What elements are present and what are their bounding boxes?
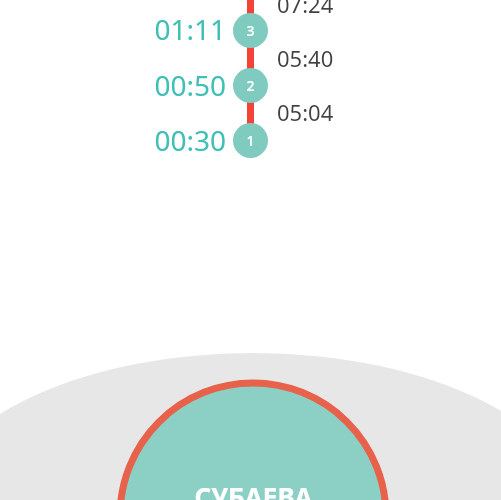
staticText: 01:11	[154, 10, 226, 46]
staticText: 05:40	[277, 43, 334, 73]
button[interactable]: 05:04	[277, 97, 367, 127]
button[interactable]: СУБАЕВА	[194, 479, 313, 500]
button[interactable]: 00:30	[116, 121, 226, 157]
button[interactable]: Lap 1	[233, 123, 268, 158]
staticText: 07:24	[277, 0, 334, 19]
staticText: 3	[246, 21, 255, 40]
button[interactable]: 00:50	[116, 66, 226, 102]
staticText: 00:30	[154, 121, 226, 157]
staticText: 05:04	[277, 97, 334, 127]
button[interactable]: Lap 3	[233, 13, 268, 48]
staticText: 00:50	[154, 66, 226, 102]
button[interactable]: 07:24	[277, 0, 367, 19]
staticText: СУБАЕВА	[194, 479, 313, 500]
button[interactable]: Lap 2	[233, 68, 268, 103]
button[interactable]: 01:11	[116, 10, 226, 46]
button[interactable]: 05:40	[277, 43, 367, 73]
staticText: 1	[246, 131, 255, 150]
staticText: 2	[246, 76, 255, 95]
